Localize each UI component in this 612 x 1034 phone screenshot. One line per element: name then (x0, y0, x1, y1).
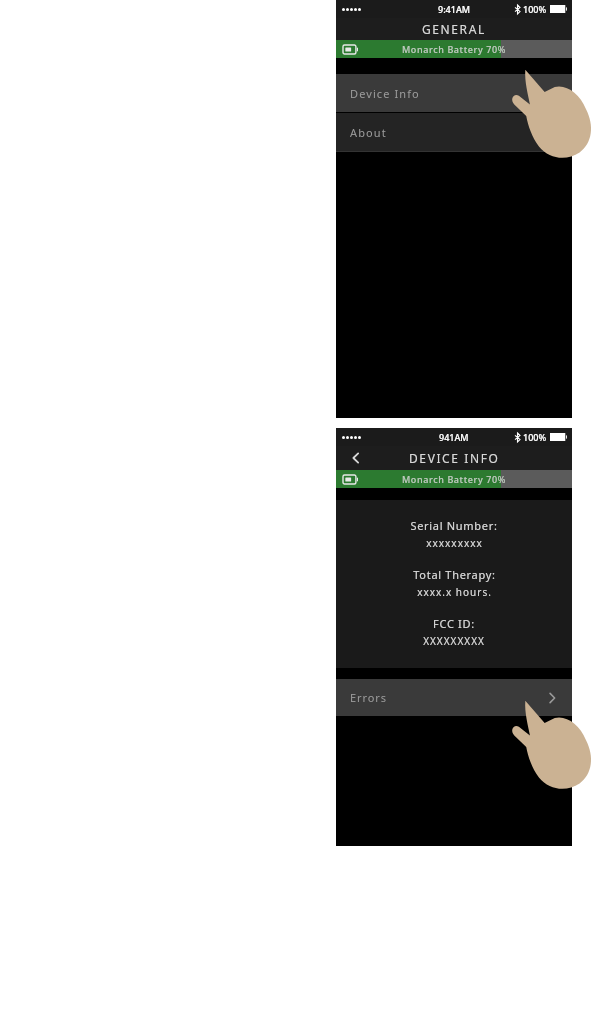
staticText: Monarch Battery 70% (402, 473, 506, 485)
staticText: xxxx.x hours. (417, 585, 492, 599)
staticText: Total Therapy: (413, 567, 496, 582)
button[interactable]: Device Info (336, 74, 572, 112)
staticText: Device Info (350, 86, 420, 101)
staticText: Monarch Battery 70% (402, 43, 506, 55)
staticText: GENERAL (422, 21, 486, 37)
staticText: 100% (523, 3, 547, 15)
staticText: XXXXXXXXX (423, 634, 485, 648)
staticText: FCC ID: (433, 616, 475, 631)
staticText: 9:41AM (438, 3, 471, 15)
staticText: xxxxxxxxx (426, 536, 483, 550)
staticText: DEVICE INFO (409, 450, 500, 466)
button[interactable]: Errors (336, 679, 572, 716)
button[interactable]: About (336, 113, 572, 151)
button[interactable]: Back (336, 446, 376, 470)
staticText: About (350, 125, 387, 140)
staticText: Errors (350, 690, 387, 705)
staticText: Serial Number: (410, 518, 498, 533)
staticText: 100% (523, 431, 547, 443)
staticText: 941AM (439, 431, 469, 443)
